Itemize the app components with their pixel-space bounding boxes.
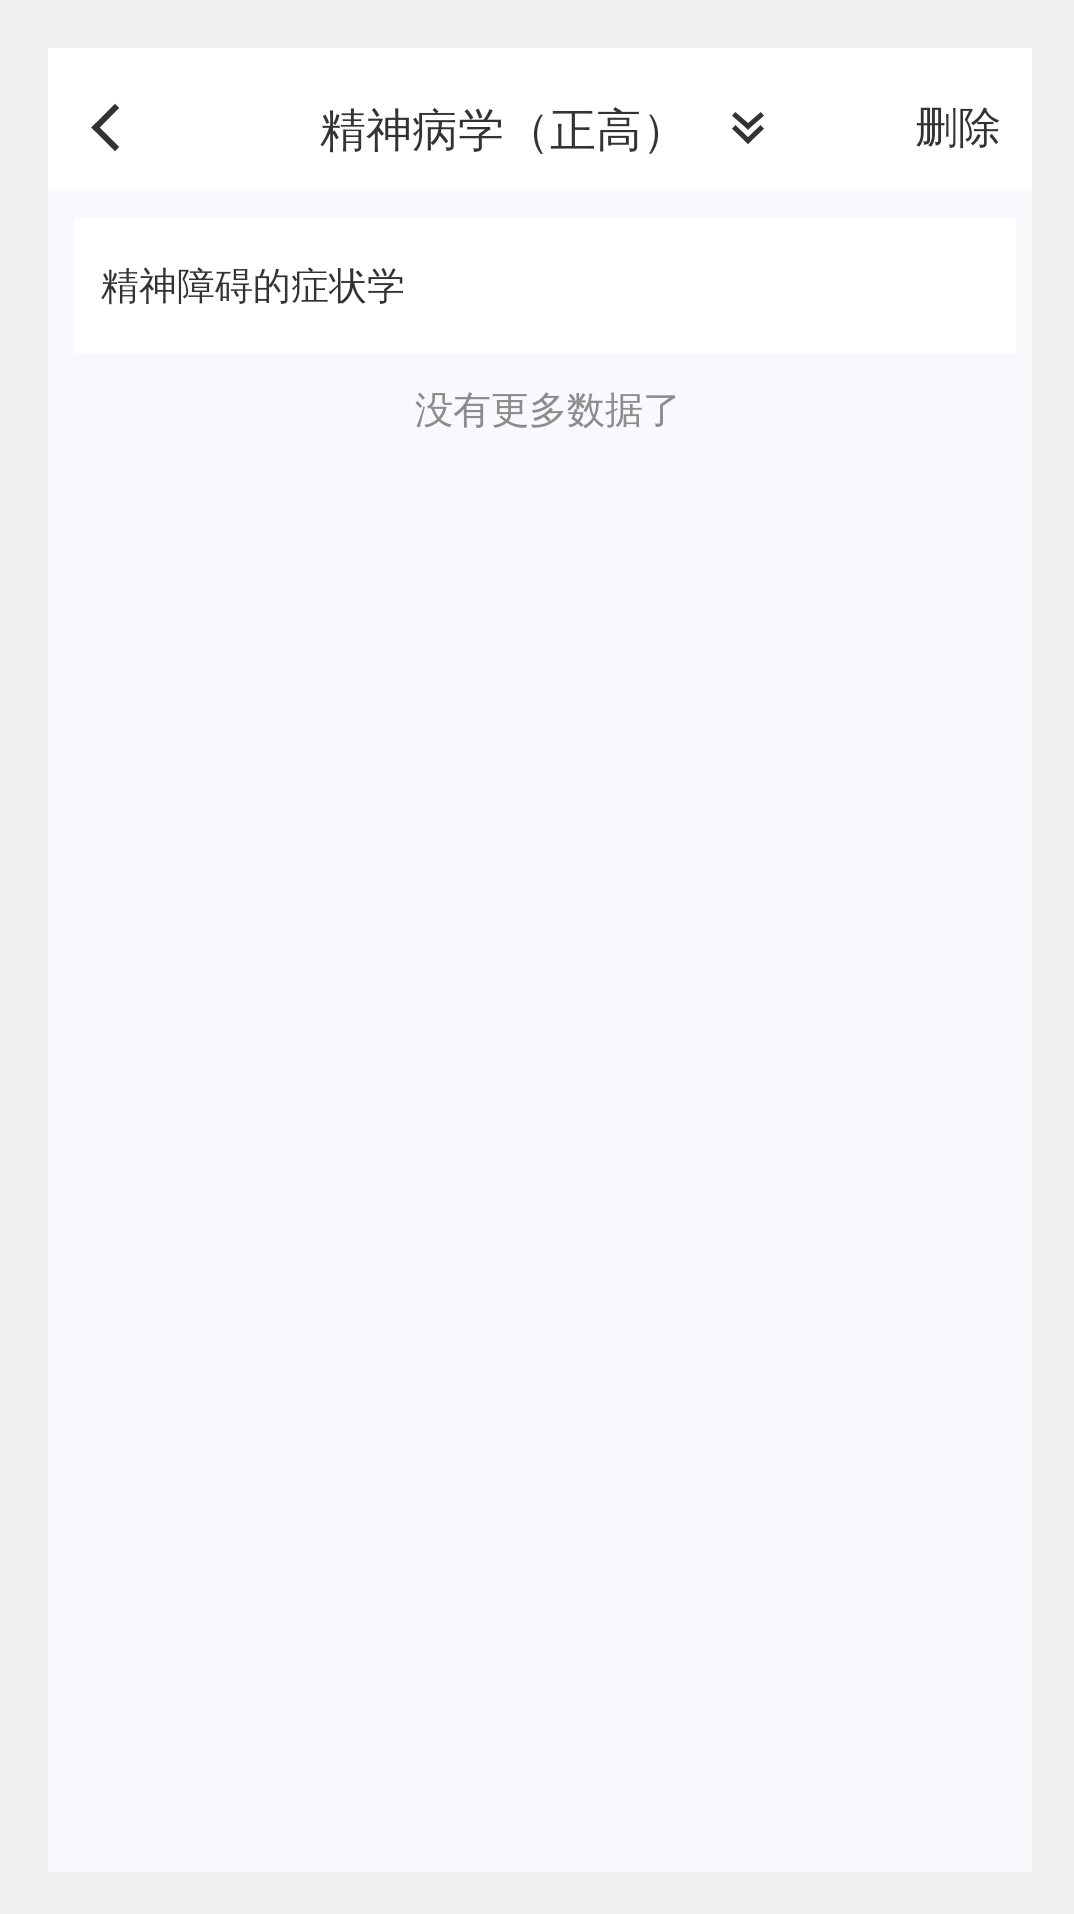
staticText: 精神障碍的症状学 <box>101 262 405 310</box>
button[interactable]: 精神病学（正高） <box>300 74 786 166</box>
button[interactable]: 删除 <box>885 72 1030 168</box>
button[interactable]: Back <box>57 77 153 177</box>
button[interactable]: 精神障碍的症状学 <box>74 218 1016 353</box>
staticText: 删除 <box>915 101 1001 155</box>
staticText: 精神病学（正高） <box>320 102 688 160</box>
staticText: 没有更多数据了 <box>415 386 681 434</box>
